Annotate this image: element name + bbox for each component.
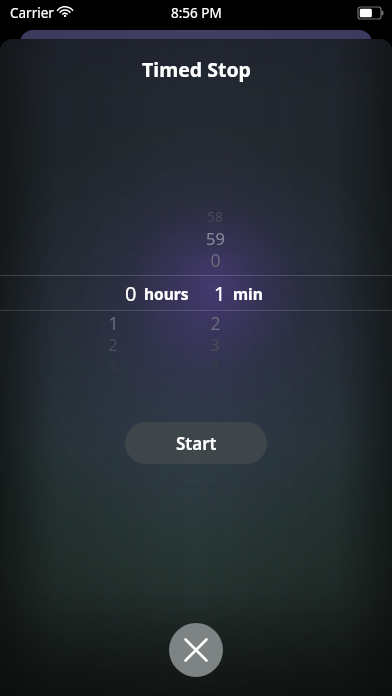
staticText: 1 xyxy=(214,280,226,307)
staticText: hours xyxy=(144,283,189,304)
button[interactable]: Close xyxy=(169,623,223,677)
button[interactable]: 1 xyxy=(196,275,316,311)
staticText: 2 xyxy=(108,333,118,355)
staticText: 1 xyxy=(108,311,119,333)
staticText: Carrier xyxy=(10,4,54,22)
staticText: 3 xyxy=(210,333,220,355)
button[interactable]: Start xyxy=(125,422,267,464)
staticText: 3 xyxy=(109,356,117,374)
staticText: 0 xyxy=(210,248,221,270)
staticText: 8:56 PM xyxy=(171,4,222,22)
staticText: 58 xyxy=(207,208,223,226)
staticText: 4 xyxy=(211,356,219,374)
staticText: Timed Stop xyxy=(142,56,251,83)
staticText: 2 xyxy=(210,311,221,333)
staticText: 59 xyxy=(206,227,225,249)
staticText: Start xyxy=(176,432,217,455)
button[interactable]: 0 xyxy=(60,275,180,311)
staticText: 0 xyxy=(125,280,137,307)
staticText: min xyxy=(233,283,263,304)
